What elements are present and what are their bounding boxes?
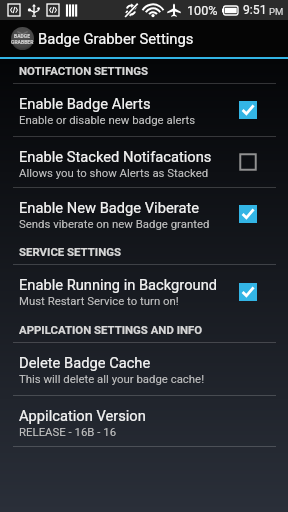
staticText: Sends viberate on new Badge granted xyxy=(19,217,210,230)
button[interactable]: Enable Stacked Notifacations xyxy=(0,137,288,187)
other: Wi-Fi xyxy=(144,4,162,17)
button[interactable]: Enable Badge Alerts xyxy=(0,84,288,136)
staticText: 100% xyxy=(187,3,218,18)
staticText: PM xyxy=(269,6,284,17)
other: Sync disabled xyxy=(124,3,138,17)
staticText: Enable New Badge Viberate xyxy=(19,199,199,216)
button[interactable]: Enable New Badge Viberate xyxy=(0,188,288,239)
staticText: This will delete all your badge cache! xyxy=(19,372,205,385)
staticText: APPILCATION SETTINGS AND INFO xyxy=(19,323,203,336)
button[interactable]: Enable Running in Background xyxy=(0,265,288,318)
staticText: 9:51 xyxy=(243,3,267,17)
staticText: NOTIFACTION SETTINGS xyxy=(19,64,148,77)
staticText: GRABBER xyxy=(11,39,34,45)
staticText: Must Restart Service to turn on! xyxy=(19,294,179,307)
staticText: Delete Badge Cache xyxy=(19,354,151,371)
button[interactable]: Delete Badge Cache xyxy=(0,343,288,395)
staticText: Enable or disable new badge alerts xyxy=(19,113,196,126)
staticText: RELEASE - 16B - 16 xyxy=(19,425,117,438)
other: Developer options xyxy=(47,4,61,16)
staticText: Enable Badge Alerts xyxy=(19,95,151,112)
other: USB connected xyxy=(28,4,40,17)
other: Signal xyxy=(65,4,78,17)
staticText: Allows you to show Alerts as Stacked xyxy=(19,166,209,179)
staticText: Enable Stacked Notifacations xyxy=(19,148,212,165)
other: Battery xyxy=(222,6,238,15)
staticText: Enable Running in Background xyxy=(19,276,218,293)
staticText: BADGE xyxy=(14,33,31,39)
other: Developer options xyxy=(8,4,22,16)
staticText: Appilcation Version xyxy=(19,407,146,424)
staticText: SERVICE SETTINGS xyxy=(19,245,121,258)
staticText: Badge Grabber Settings xyxy=(38,30,194,47)
button[interactable]: Appilcation Version xyxy=(0,396,288,446)
other: Airplane mode xyxy=(167,3,181,17)
